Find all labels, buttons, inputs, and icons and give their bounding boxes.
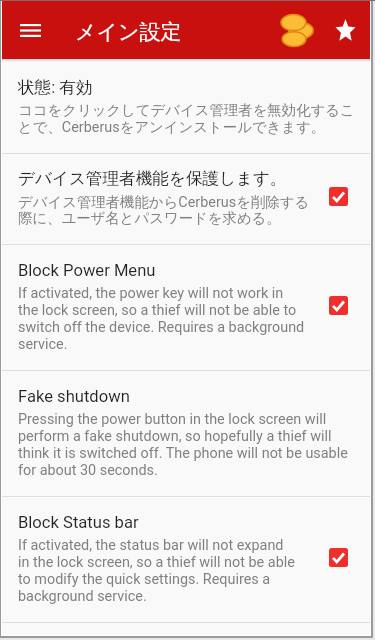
staticText: デバイス管理者機能からCerberusを削除する 際に、ユーザ名とパスワードを求…: [18, 194, 310, 227]
button[interactable]: Block Power Menu: [2, 245, 370, 370]
button[interactable]: Toggle setting: [306, 536, 370, 578]
button[interactable]: デバイス管理者機能を保護します。: [2, 154, 370, 244]
staticText: Fake shutdown: [18, 387, 130, 406]
button[interactable]: Coins: [275, 8, 319, 52]
button[interactable]: Toggle setting: [306, 284, 370, 326]
staticText: ココをクリックしてデバイス管理者を無効化するこ とで、Cerberusをアンイン…: [18, 103, 354, 136]
staticText: If activated, the status bar will not ex…: [18, 537, 295, 605]
staticText: デバイス管理者機能を保護します。: [18, 170, 287, 189]
button[interactable]: Favorite: [323, 9, 367, 53]
button[interactable]: 状態: 有効: [2, 62, 370, 153]
staticText: Pressing the power button in the lock sc…: [18, 411, 348, 479]
staticText: 状態: 有効: [18, 78, 93, 98]
staticText: メイン設定: [75, 19, 182, 45]
button[interactable]: Fake shutdown: [2, 371, 370, 496]
button[interactable]: Toggle setting: [306, 175, 370, 217]
button[interactable]: Open navigation menu: [7, 7, 53, 53]
staticText: Block Status bar: [18, 513, 139, 532]
button[interactable]: Block Status bar: [2, 497, 370, 622]
staticText: If activated, the power key will not wor…: [18, 285, 305, 353]
staticText: Block Power Menu: [18, 261, 156, 280]
